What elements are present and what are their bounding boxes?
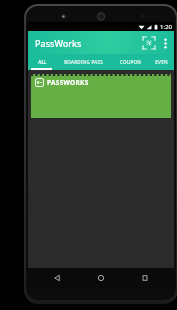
button[interactable]: Home bbox=[86, 268, 116, 288]
staticText: BOARDING PASS bbox=[64, 59, 103, 65]
button[interactable]: EVEN bbox=[149, 54, 174, 70]
button[interactable]: Back bbox=[42, 268, 72, 288]
button[interactable]: COUPON bbox=[111, 54, 149, 70]
button[interactable]: Recent apps bbox=[130, 268, 160, 288]
button[interactable]: Scan QR code bbox=[139, 33, 159, 53]
button[interactable]: PASSWORKS bbox=[31, 74, 171, 118]
staticText: 1:20 bbox=[160, 23, 172, 31]
staticText: EVEN bbox=[155, 59, 168, 65]
button[interactable]: ALL bbox=[28, 54, 56, 70]
staticText: PASSWORKS bbox=[47, 78, 89, 87]
button[interactable]: BOARDING PASS bbox=[56, 54, 111, 70]
staticText: PassWorks bbox=[35, 37, 82, 49]
staticText: ALL bbox=[38, 59, 47, 65]
button[interactable]: More options bbox=[159, 33, 171, 53]
staticText: COUPON bbox=[120, 59, 141, 65]
